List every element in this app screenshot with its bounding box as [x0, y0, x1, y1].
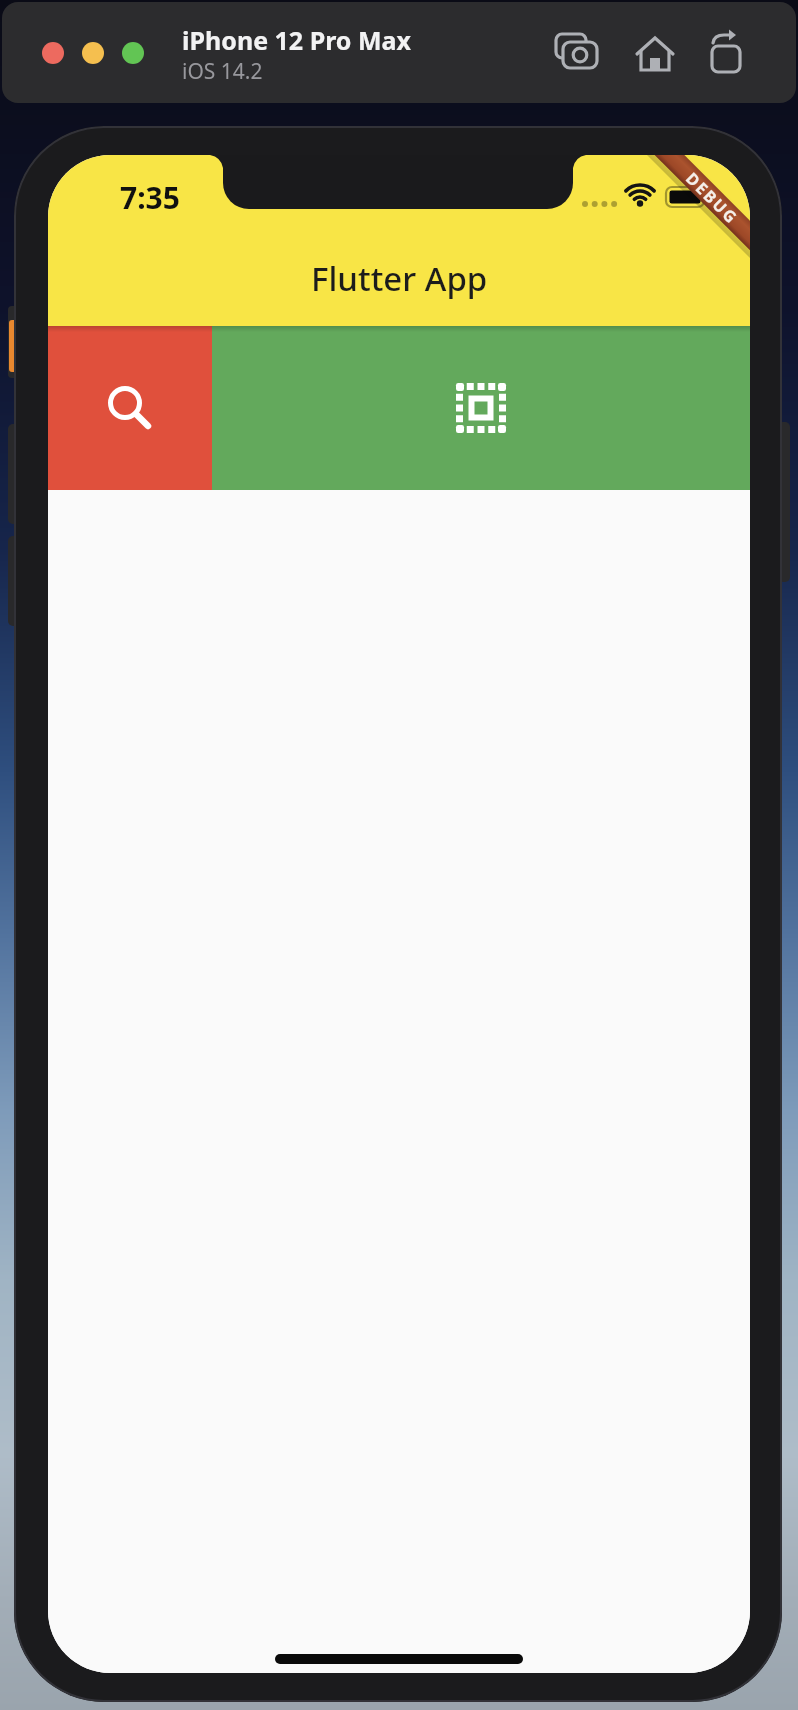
button[interactable]: [82, 42, 104, 64]
button[interactable]: [122, 42, 144, 64]
button[interactable]: [212, 326, 750, 490]
staticText: iOS 14.2: [182, 57, 263, 86]
staticText: Flutter App: [311, 256, 488, 301]
button[interactable]: [629, 28, 681, 80]
staticText: iPhone 12 Pro Max: [182, 23, 411, 57]
staticText: 7:35: [120, 177, 180, 218]
button[interactable]: [550, 28, 602, 80]
button[interactable]: [42, 42, 64, 64]
button[interactable]: [48, 326, 212, 490]
staticText: DEBUG: [682, 167, 743, 228]
button[interactable]: [700, 28, 752, 80]
